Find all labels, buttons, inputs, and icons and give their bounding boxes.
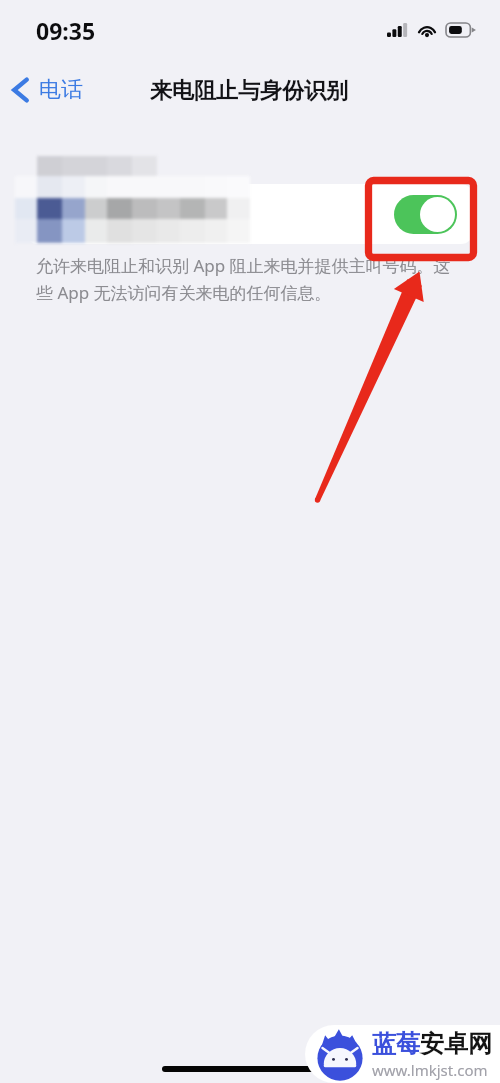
button[interactable]: Enable call blocking [26, 184, 473, 244]
staticText: 来电阻止与身份识别 [150, 77, 348, 105]
staticText: 些 App 无法访问有关来电的任何信息。 [36, 281, 332, 304]
staticText: 09:35 [36, 15, 96, 46]
staticText: www.lmkjst.com [372, 1060, 488, 1080]
staticText: 允许来电阻止和识别 App 阻止来电并提供主叫号码。这 [36, 254, 451, 277]
staticText: 电话 [39, 76, 83, 104]
button[interactable]: 电话 [6, 68, 89, 112]
staticText: 安卓网 [420, 1029, 492, 1059]
button[interactable]: Enable call blocking [394, 195, 457, 234]
staticText: 蓝莓 [372, 1029, 420, 1059]
